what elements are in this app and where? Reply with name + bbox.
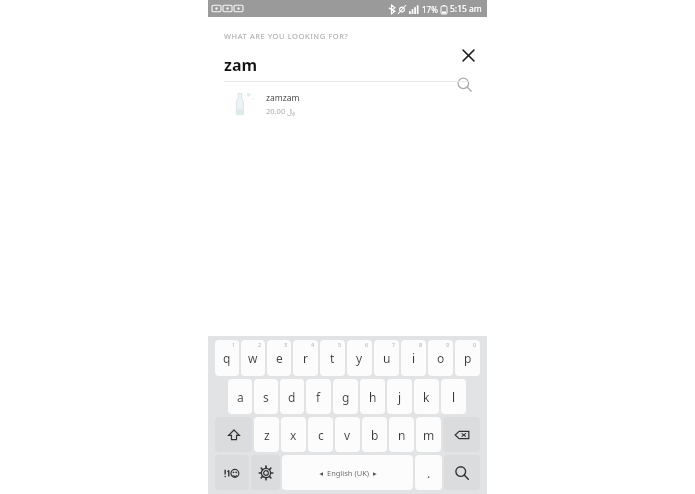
staticText: d (288, 389, 296, 405)
button[interactable]: Backspace (443, 417, 480, 452)
button[interactable]: v (335, 417, 360, 452)
button[interactable]: Close (454, 41, 482, 69)
staticText: . (427, 465, 431, 481)
button[interactable]: p (455, 340, 480, 376)
button[interactable]: o (428, 340, 453, 376)
button[interactable]: i (401, 340, 426, 376)
button[interactable]: l (441, 379, 466, 414)
staticText: i (412, 350, 416, 366)
staticText: zamzam (266, 92, 300, 104)
button[interactable]: r (293, 340, 318, 376)
staticText: 0 (473, 341, 477, 348)
staticText: b (371, 427, 379, 443)
staticText: 2 (258, 341, 262, 348)
staticText: ◂ English (UK) ▸ (319, 468, 377, 478)
staticText: s (263, 389, 269, 405)
staticText: zam (224, 54, 258, 76)
staticText: o (437, 350, 445, 366)
button[interactable]: c (308, 417, 333, 452)
staticText: 3 (284, 341, 288, 348)
staticText: 6 (365, 341, 369, 348)
button[interactable]: k (414, 379, 439, 414)
button[interactable]: s (254, 379, 278, 414)
button[interactable]: h (360, 379, 385, 414)
button[interactable]: e (267, 340, 291, 376)
staticText: x (290, 427, 297, 443)
staticText: WHAT ARE YOU LOOKING FOR? (224, 31, 349, 41)
staticText: z (264, 427, 270, 443)
staticText: p (464, 350, 472, 366)
button[interactable]: x (281, 417, 306, 452)
button[interactable]: y (347, 340, 372, 376)
staticText: 8 (419, 341, 423, 348)
staticText: 5:15 am (450, 3, 482, 15)
staticText: 17% (422, 4, 438, 15)
button[interactable]: u (374, 340, 399, 376)
button[interactable]: ◂ English (UK) ▸ (282, 455, 413, 490)
staticText: u (383, 350, 391, 366)
staticText: 5 (338, 341, 342, 348)
button[interactable]: Search (449, 69, 479, 99)
button[interactable]: n (389, 417, 414, 452)
button[interactable]: t (320, 340, 345, 376)
staticText: h (369, 389, 377, 405)
button[interactable]: Shift (215, 417, 252, 452)
staticText: a (237, 389, 244, 405)
button[interactable]: d (280, 379, 304, 414)
button[interactable]: m (416, 417, 441, 452)
button[interactable]: z (254, 417, 279, 452)
staticText: 7 (392, 341, 396, 348)
staticText: r (303, 350, 308, 366)
button[interactable]: f (306, 379, 331, 414)
staticText: c (318, 427, 324, 443)
staticText: 4 (311, 341, 315, 348)
button[interactable]: j (387, 379, 412, 414)
staticText: m (423, 427, 435, 443)
staticText: 1 (232, 341, 236, 348)
staticText: q (223, 350, 231, 366)
button[interactable]: . (415, 455, 442, 490)
staticText: y (356, 350, 363, 366)
staticText: n (398, 427, 406, 443)
staticText: k (423, 389, 430, 405)
staticText: g (342, 389, 350, 405)
staticText: 9 (446, 341, 450, 348)
staticText: t (330, 350, 335, 366)
staticText: f (316, 389, 321, 405)
staticText: e (276, 350, 283, 366)
button[interactable]: Settings (251, 455, 280, 490)
button[interactable]: a (228, 379, 252, 414)
button[interactable]: q (215, 340, 239, 376)
staticText: j (398, 389, 402, 405)
button[interactable]: Search (444, 455, 480, 490)
button[interactable]: b (362, 417, 387, 452)
staticText: 20.00 ﷼ (266, 106, 296, 116)
button[interactable]: w (241, 340, 265, 376)
button[interactable]: g (333, 379, 358, 414)
button[interactable]: zamzam (208, 85, 487, 123)
staticText: w (248, 350, 258, 366)
staticText: l (452, 389, 456, 405)
staticText: v (344, 427, 351, 443)
button[interactable]: Symbols (215, 455, 249, 490)
